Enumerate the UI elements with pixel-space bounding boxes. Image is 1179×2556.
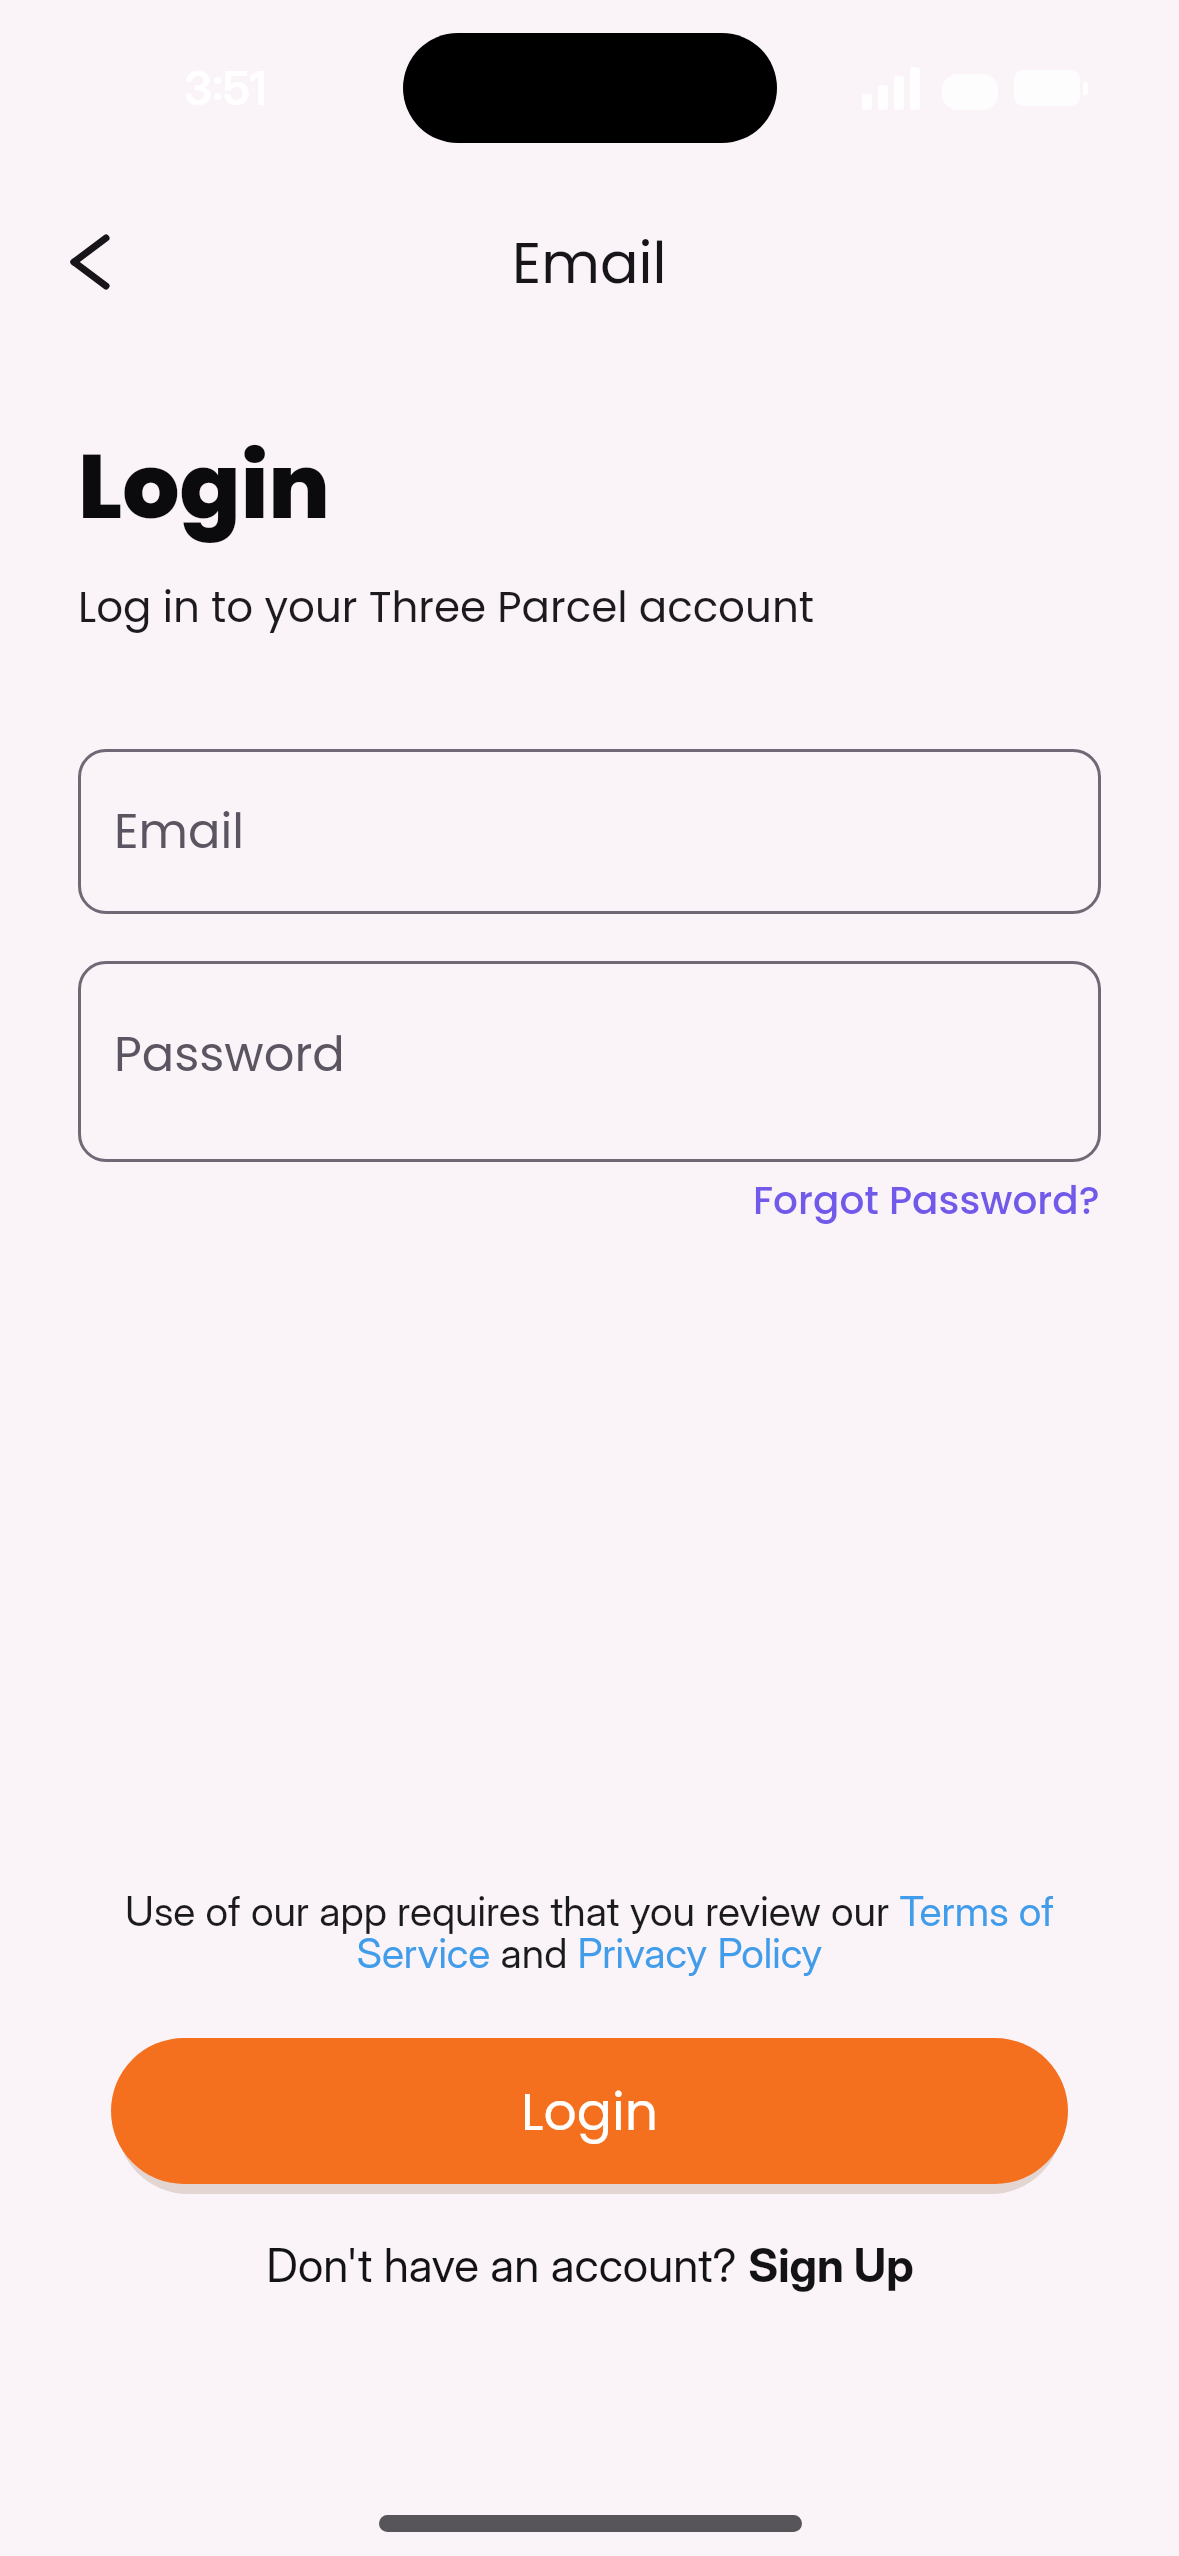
staticText: Login <box>521 2075 658 2148</box>
button[interactable]: Don't have an account? Sign Up <box>0 2237 1179 2293</box>
staticText: Email <box>512 223 667 303</box>
button[interactable]: Email <box>78 749 1101 914</box>
staticText: Password <box>114 1021 345 1088</box>
staticText: Log in to your Three Parcel account <box>78 578 815 637</box>
staticText: Use of our app requires that you review … <box>0 1886 1179 1978</box>
button[interactable] <box>50 222 130 302</box>
staticText: Login <box>78 424 331 550</box>
button[interactable]: Forgot Password? <box>753 1173 1100 1228</box>
button[interactable]: Login <box>111 2038 1068 2184</box>
staticText: Email <box>114 798 245 865</box>
button[interactable]: Password <box>78 961 1101 1162</box>
staticText: 3:51 <box>184 60 267 116</box>
staticText: Don't have an account? Sign Up <box>266 2237 914 2293</box>
